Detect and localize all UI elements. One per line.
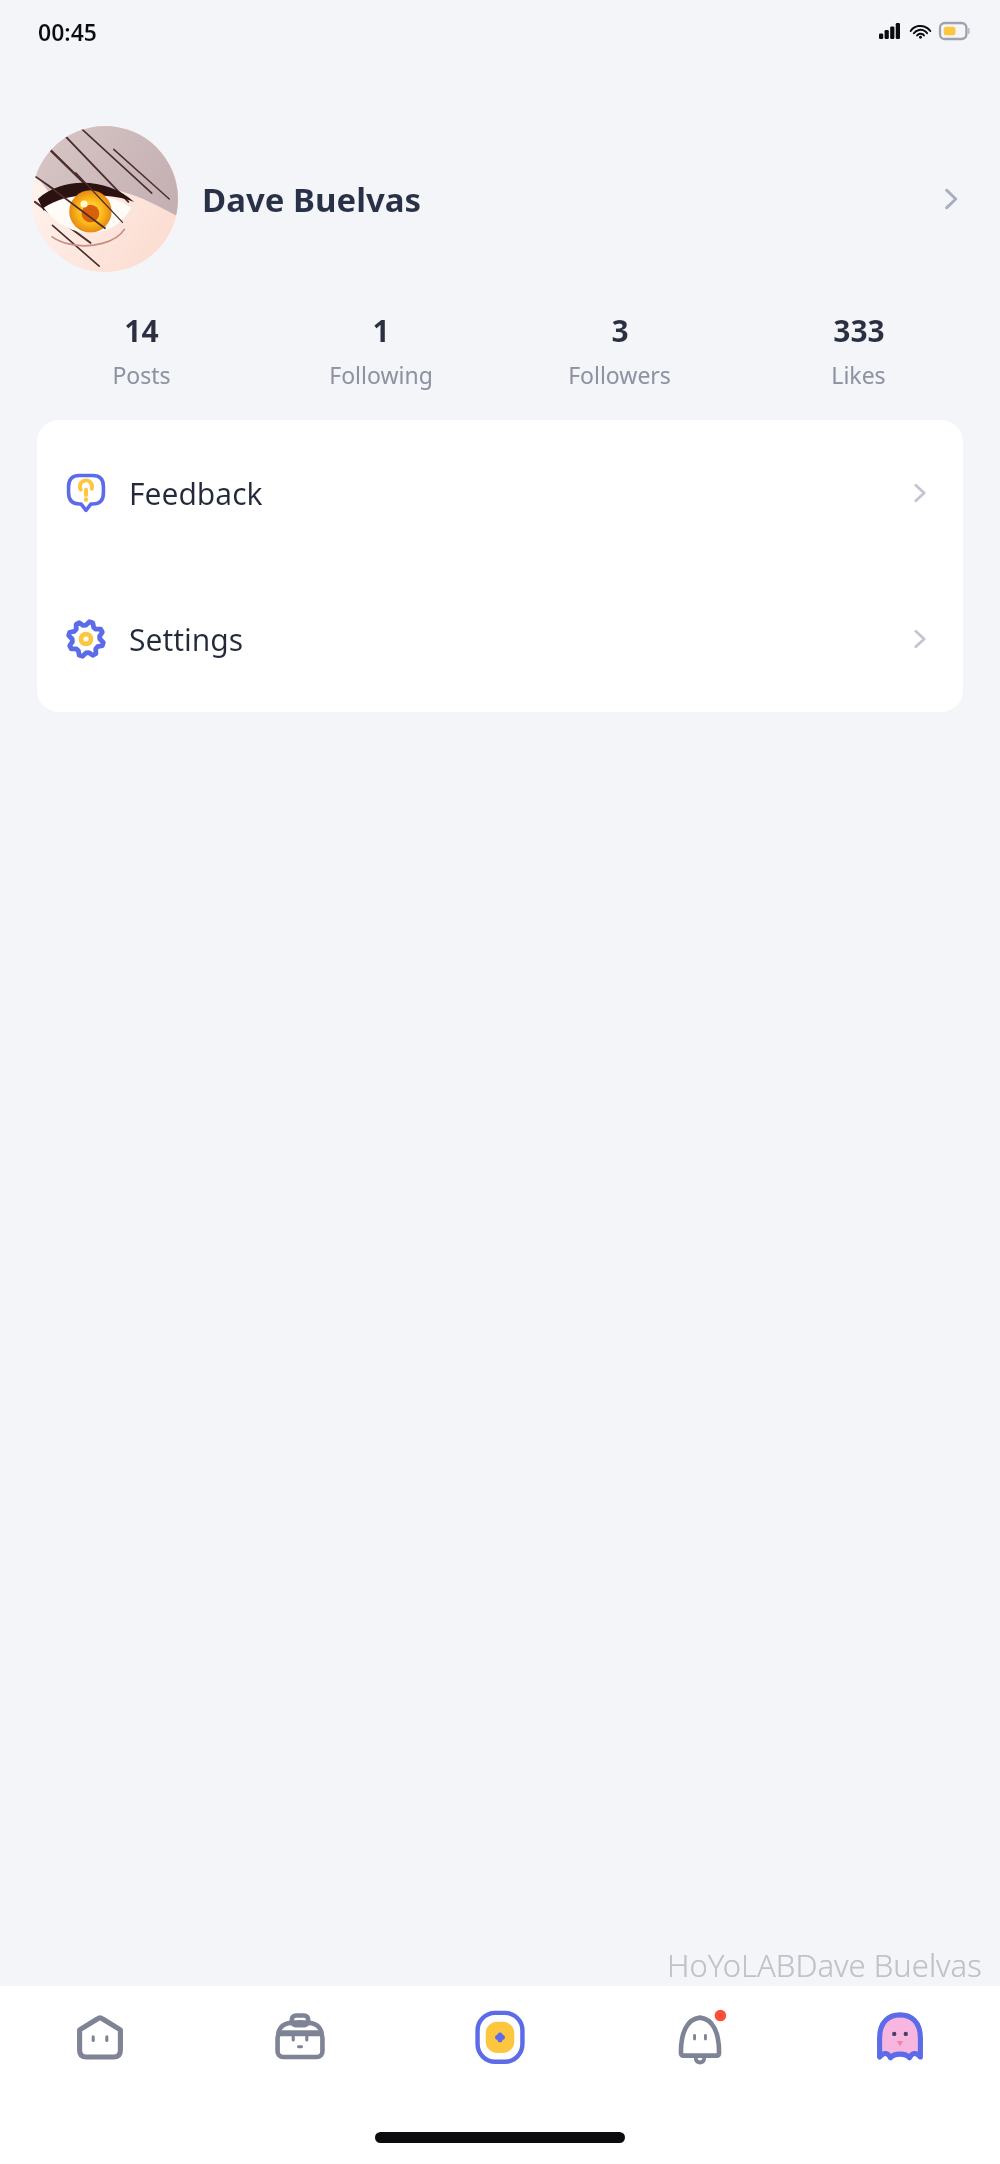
staticText: 3 bbox=[611, 310, 629, 351]
button[interactable]: Settings bbox=[37, 566, 963, 712]
button[interactable]: Notifications bbox=[600, 1986, 800, 2118]
button[interactable]: 14 bbox=[22, 306, 261, 394]
button[interactable]: Home bbox=[0, 1986, 200, 2118]
staticText: Following bbox=[329, 359, 433, 390]
button[interactable]: Toolbox bbox=[200, 1986, 400, 2118]
staticText: 333 bbox=[833, 310, 885, 351]
staticText: Followers bbox=[568, 359, 671, 390]
staticText: 1 bbox=[372, 310, 390, 351]
button[interactable]: Create post bbox=[400, 1986, 600, 2118]
staticText: Likes bbox=[831, 359, 886, 390]
button[interactable]: Feedback bbox=[37, 420, 963, 566]
button[interactable]: Profile bbox=[800, 1986, 1000, 2118]
staticText: Posts bbox=[112, 359, 171, 390]
button[interactable]: 333 bbox=[739, 306, 978, 394]
staticText: HoYoLABDave Buelvas bbox=[667, 1944, 982, 1986]
button[interactable]: Dave Buelvas bbox=[0, 122, 1000, 276]
button[interactable]: 1 bbox=[261, 306, 500, 394]
staticText: 14 bbox=[124, 310, 159, 351]
staticText: 00:45 bbox=[38, 16, 97, 47]
staticText: Feedback bbox=[129, 473, 263, 514]
staticText: Settings bbox=[129, 619, 244, 660]
staticText: Dave Buelvas bbox=[202, 177, 422, 222]
button[interactable]: 3 bbox=[500, 306, 739, 394]
